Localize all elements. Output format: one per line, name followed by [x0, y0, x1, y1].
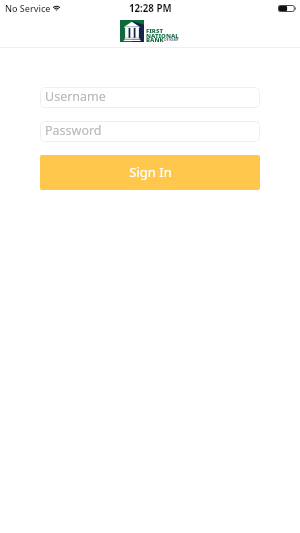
- button[interactable]: Username: [40, 87, 260, 108]
- staticText: 12:28 PM: [129, 2, 172, 15]
- other: Wi-Fi signal: [52, 4, 61, 11]
- staticText: No Service: [5, 2, 51, 14]
- staticText: Password: [45, 122, 102, 139]
- button[interactable]: Password: [40, 121, 260, 142]
- staticText: Username: [45, 88, 106, 105]
- staticText: Sign In: [129, 163, 172, 181]
- button[interactable]: Sign In: [40, 155, 260, 190]
- button[interactable]: First National Bank of Kemp: [120, 20, 181, 42]
- other: Battery: [278, 5, 296, 12]
